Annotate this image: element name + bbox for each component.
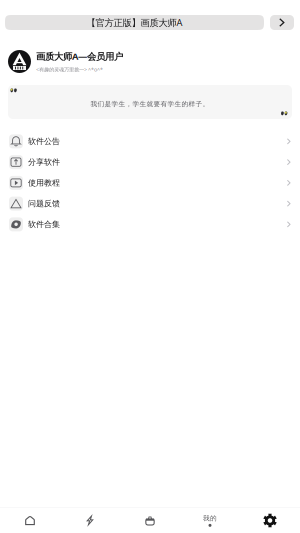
staticText: 画质大师A—会员用户 [36, 50, 123, 62]
button[interactable]: 分享软件 [0, 152, 300, 173]
button[interactable]: 软件合集 [0, 214, 300, 235]
button[interactable]: Next [270, 15, 294, 30]
button[interactable]: 设置 [240, 508, 300, 532]
staticText: 问题反馈 [28, 199, 60, 208]
staticText: 软件合集 [28, 219, 60, 229]
staticText: 【官方正版】画质大师A [86, 16, 182, 29]
staticText: 软件公告 [28, 136, 60, 146]
staticText: 我们是学生，学生就要有学生的样子。 [90, 100, 209, 108]
staticText: 分享软件 [28, 157, 60, 167]
button[interactable]: 加速 [60, 508, 120, 532]
button[interactable]: 使用教程 [0, 172, 300, 193]
button[interactable]: 我的 [180, 508, 240, 532]
staticText: <有趣的灵魂万里挑一> ^*o^* [36, 66, 103, 73]
button[interactable]: 软件公告 [0, 131, 300, 152]
button[interactable]: 商城 [120, 508, 180, 532]
button[interactable]: 【官方正版】画质大师A [5, 15, 264, 30]
staticText: 我的 [203, 514, 217, 522]
button[interactable]: 问题反馈 [0, 193, 300, 214]
button[interactable]: 首页 [0, 508, 60, 532]
staticText: 使用教程 [28, 178, 60, 188]
